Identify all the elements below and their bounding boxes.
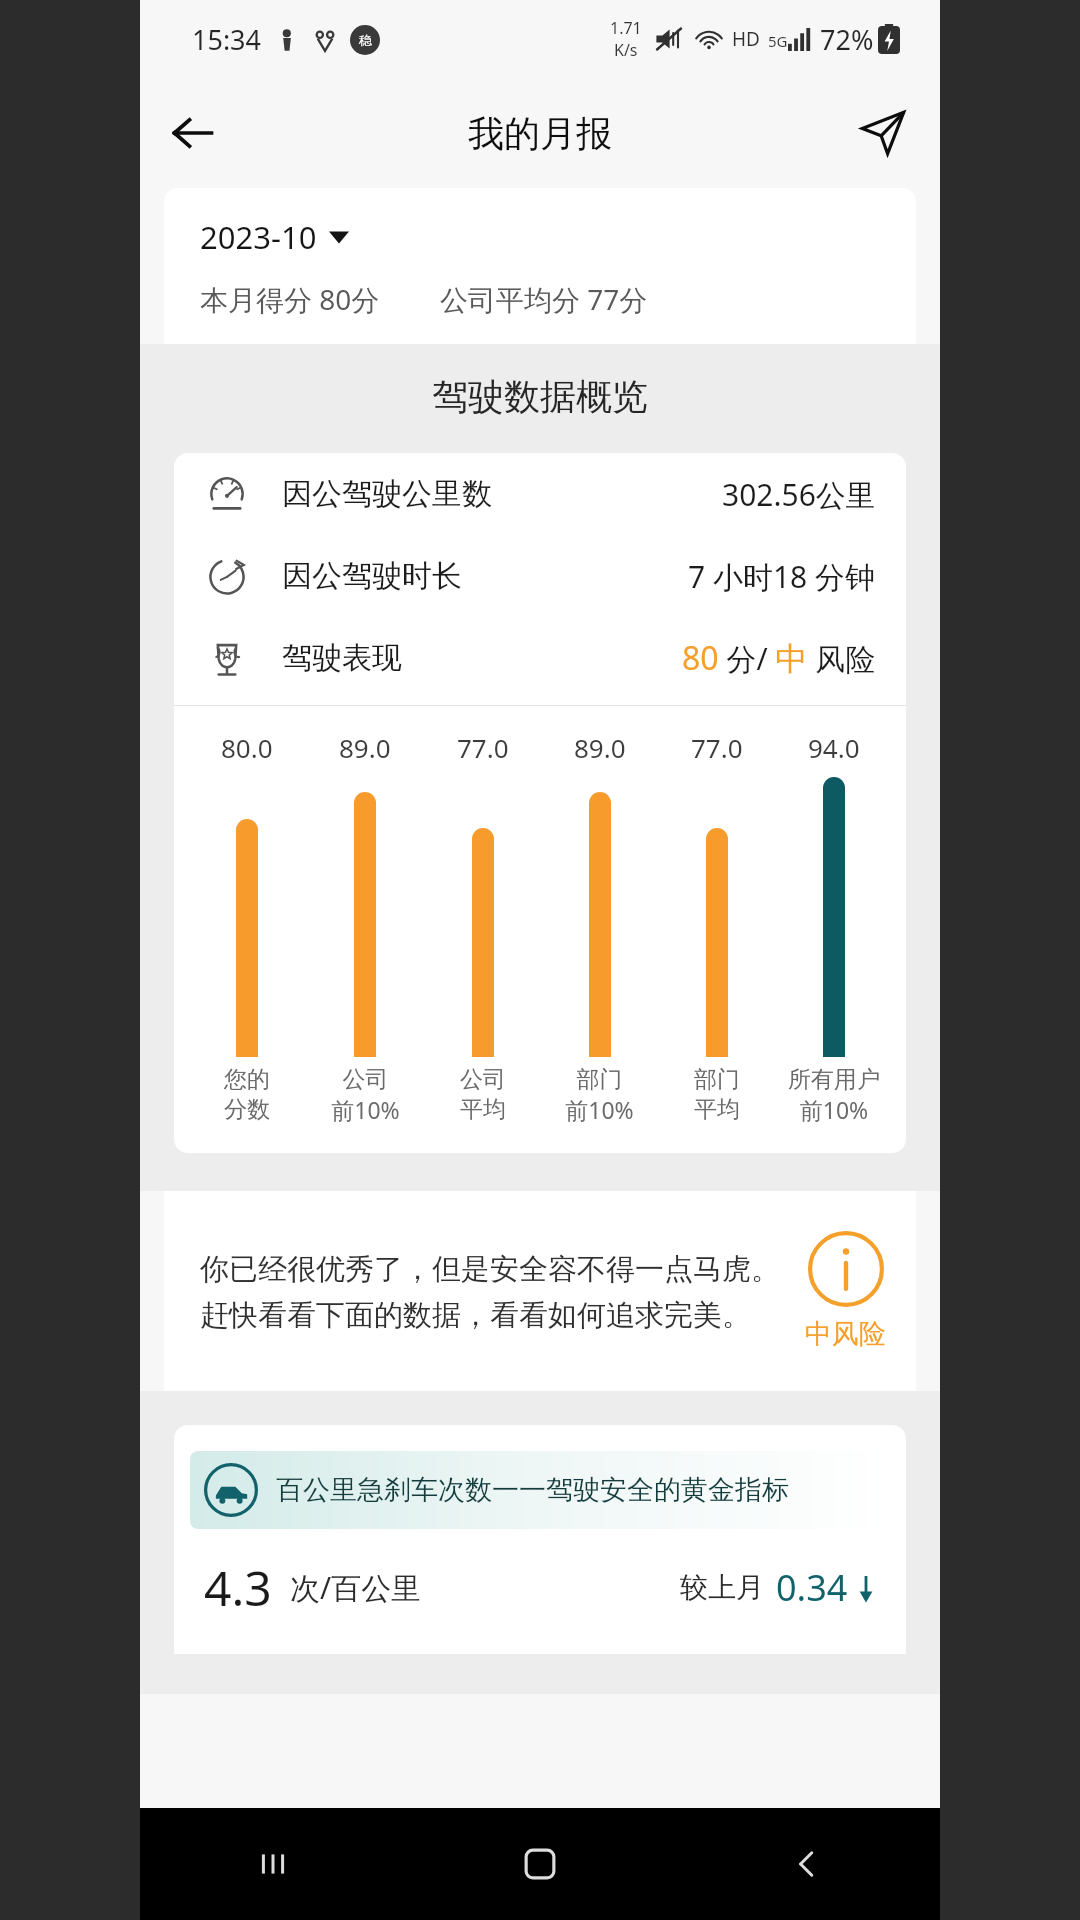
- button[interactable]: 因公驾驶公里数: [174, 453, 906, 535]
- staticText: 2023-10: [200, 216, 317, 258]
- button[interactable]: Back: [158, 98, 228, 168]
- staticText: 7 小时18 分钟: [688, 556, 876, 597]
- staticText: 94.0: [808, 730, 860, 765]
- button[interactable]: 因公驾驶时长: [174, 535, 906, 617]
- staticText: 89.0: [574, 730, 626, 765]
- staticText: 15:34: [192, 21, 262, 58]
- staticText: 公司平均分 77分: [440, 280, 648, 318]
- staticText: 较上月: [680, 1570, 764, 1605]
- staticText: 部门 平均: [694, 1065, 740, 1124]
- staticText: 百公里急刹车次数一一驾驶安全的黄金指标: [276, 1473, 789, 1507]
- button[interactable]: 2023-10: [200, 216, 349, 258]
- staticText: 302.56公里: [722, 474, 876, 515]
- staticText: 1.71: [610, 17, 642, 39]
- staticText: 89.0: [339, 730, 391, 765]
- staticText: 驾驶数据概览: [164, 374, 916, 419]
- button[interactable]: 风险等级: [805, 1231, 886, 1351]
- button[interactable]: Back: [673, 1808, 940, 1920]
- staticText: 4.3: [204, 1555, 272, 1620]
- staticText: 77.0: [457, 730, 509, 765]
- staticText: K/s: [614, 39, 638, 61]
- staticText: 80.0: [221, 730, 273, 765]
- staticText: 部门 前10%: [565, 1065, 634, 1125]
- staticText: 5G: [768, 31, 788, 51]
- button[interactable]: Recents: [140, 1808, 406, 1920]
- staticText: 次/百公里: [290, 1567, 422, 1608]
- staticText: 因公驾驶时长: [282, 557, 462, 595]
- staticText: 77.0: [691, 730, 743, 765]
- staticText: 您的 分数: [224, 1065, 270, 1124]
- staticText: 本月得分 80分: [200, 280, 380, 318]
- staticText: 公司 平均: [460, 1065, 506, 1124]
- staticText: 中风险: [805, 1317, 886, 1351]
- staticText: 驾驶表现: [282, 639, 402, 677]
- staticText: 所有用户 前10%: [788, 1065, 880, 1125]
- staticText: 72%: [820, 21, 874, 58]
- button[interactable]: Home: [406, 1808, 673, 1920]
- button[interactable]: Share: [848, 98, 918, 168]
- staticText: 稳: [359, 32, 372, 48]
- staticText: 因公驾驶公里数: [282, 475, 492, 513]
- staticText: 公司 前10%: [331, 1065, 400, 1125]
- button[interactable]: 驾驶表现: [174, 617, 906, 699]
- staticText: 你已经很优秀了，但是安全容不得一点马虎。 赶快看看下面的数据，看看如何追求完美。: [200, 1248, 783, 1334]
- staticText: 0.34: [776, 1563, 848, 1612]
- staticText: 我的月报: [468, 111, 612, 156]
- staticText: HD: [732, 26, 760, 52]
- staticText: 80 分/ 中 风险: [682, 636, 876, 680]
